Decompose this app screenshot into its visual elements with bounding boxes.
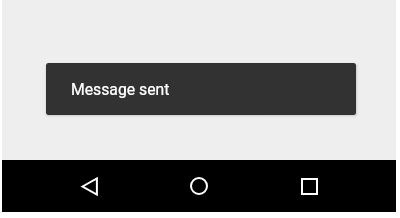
button[interactable]: Message sent: [46, 63, 356, 115]
button[interactable]: Back: [69, 166, 109, 206]
button[interactable]: Recent apps: [289, 166, 329, 206]
button[interactable]: Home: [179, 166, 219, 206]
staticText: Message sent: [71, 80, 170, 98]
